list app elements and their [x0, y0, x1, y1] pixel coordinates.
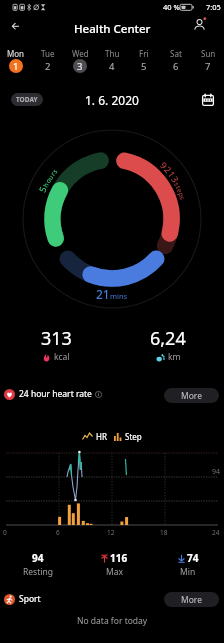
staticText: No data for today — [77, 615, 148, 627]
button[interactable]: Mon — [0, 46, 32, 80]
staticText: mins — [110, 291, 128, 301]
staticText: Fri — [139, 48, 149, 59]
button[interactable]: 94 — [0, 551, 76, 578]
staticText: Wed — [72, 48, 89, 59]
staticText: 0 — [3, 528, 7, 537]
staticText: Resting — [23, 566, 53, 578]
staticText: TODAY — [16, 95, 38, 104]
staticText: 2 — [45, 60, 51, 73]
staticText: 6 — [173, 60, 179, 73]
staticText: kcal — [54, 351, 70, 363]
staticText: 5 — [141, 60, 147, 73]
staticText: 3 — [77, 60, 83, 73]
staticText: 4 — [109, 60, 115, 73]
button[interactable]: TODAY — [11, 93, 43, 106]
button[interactable]: Tue — [32, 46, 64, 80]
staticText: 12 — [107, 528, 115, 537]
button[interactable]: Sport — [4, 590, 41, 608]
staticText: Tue — [41, 48, 55, 59]
staticText: More — [181, 390, 202, 402]
button[interactable]: Wed — [64, 46, 96, 80]
button[interactable]: Sat — [160, 46, 192, 80]
button[interactable]: Thu — [96, 46, 128, 80]
staticText: Thu — [105, 48, 120, 59]
staticText: 94 — [212, 467, 221, 477]
button[interactable]: 313 — [0, 326, 112, 363]
button[interactable]: More — [164, 592, 219, 607]
staticText: Sun — [201, 48, 216, 59]
button[interactable]: Profile — [188, 14, 212, 38]
staticText: 24 hour heart rate — [19, 388, 92, 400]
button[interactable]: 116 — [76, 551, 152, 578]
staticText: 94 — [32, 551, 44, 565]
staticText: 40 % — [163, 2, 180, 12]
staticText: Max — [106, 566, 123, 578]
staticText: Health Center — [74, 21, 151, 37]
staticText: 116 — [110, 551, 128, 565]
button[interactable]: Sun — [192, 46, 224, 80]
staticText: 24 — [212, 528, 220, 537]
button[interactable]: Calendar — [196, 88, 220, 112]
button[interactable]: 74 — [150, 551, 224, 578]
button[interactable]: Back — [3, 14, 27, 38]
staticText: 7 — [205, 60, 211, 73]
staticText: Mon — [7, 48, 25, 59]
staticText: 18 — [160, 528, 168, 537]
staticText: 6 — [56, 528, 60, 537]
button[interactable]: 6,24 — [112, 326, 224, 363]
staticText: 74 — [187, 551, 199, 565]
button[interactable]: More — [164, 388, 219, 403]
staticText: 7:05 — [206, 2, 221, 12]
staticText: More — [181, 594, 202, 606]
staticText: Step — [125, 431, 142, 442]
staticText: km — [168, 351, 181, 363]
staticText: 1 — [13, 60, 19, 73]
button[interactable]: Fri — [128, 46, 160, 80]
staticText: 21 — [96, 286, 110, 302]
staticText: 313 — [41, 326, 72, 351]
staticText: 6,24 — [150, 326, 186, 351]
staticText: Sat — [170, 48, 182, 59]
staticText: Sport — [19, 593, 41, 605]
staticText: Min — [180, 566, 196, 578]
staticText: 1. 6. 2020 — [85, 92, 139, 108]
staticText: HR — [96, 431, 107, 442]
button[interactable]: 24 hour heart rate — [4, 385, 102, 403]
